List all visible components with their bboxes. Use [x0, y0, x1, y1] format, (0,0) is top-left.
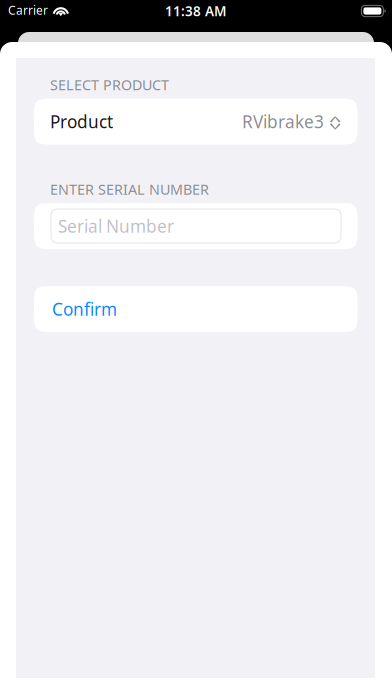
staticText: 11:38 AM: [165, 2, 227, 20]
staticText: RVibrake3: [242, 110, 324, 133]
button[interactable]: Confirm: [16, 286, 357, 332]
staticText: Carrier: [8, 2, 48, 18]
staticText: Serial Number: [58, 214, 174, 238]
button[interactable]: Product: [16, 98, 357, 144]
staticText: Confirm: [52, 297, 117, 321]
staticText: ENTER SERIAL NUMBER: [50, 179, 209, 199]
staticText: SELECT PRODUCT: [50, 75, 169, 94]
staticText: Product: [50, 110, 113, 133]
